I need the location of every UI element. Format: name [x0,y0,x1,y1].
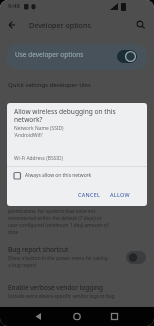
staticText: user-configured (minimum 1 day) amount o… [8,222,109,229]
staticText: 'AndroidWifi' [14,132,43,139]
staticText: reconnected within the default (7 days) … [8,215,102,222]
staticText: Use developer options [15,50,84,59]
staticText: Developer options [29,20,91,30]
staticText: Always allow on this network [25,172,92,179]
staticText: a bug report [8,262,37,269]
staticText: CANCEL [78,191,101,198]
staticText: Enable verbose vendor logging [8,283,103,292]
button[interactable]: ALLOW [103,187,137,201]
button[interactable]: Always allow on this network [7,169,147,183]
staticText: Quick settings developer tiles [8,81,91,89]
button[interactable] [104,308,122,326]
staticText: Show a button in the power menu for taki… [8,255,108,262]
button[interactable]: Enable verbose vendor logging [0,281,154,307]
button[interactable]: Bug report shortcut [0,243,154,277]
button[interactable] [68,308,86,326]
staticText: time [8,229,19,236]
staticText: network? [14,115,43,124]
staticText: Allow wireless debugging on this [14,107,116,116]
button[interactable]: Quick settings developer tiles [0,74,154,94]
staticText: 9:48 [8,2,20,10]
button[interactable]: Use developer options [6,44,148,70]
button[interactable] [28,308,46,326]
staticText: Include extra device-specific vendor log… [8,293,115,300]
staticText: Network Name (SSID) [14,125,64,132]
button[interactable]: CANCEL [71,187,107,201]
staticText: ALLOW [110,191,130,198]
staticText: permissions, for systems that have not [8,208,96,215]
button[interactable]: Developer options [0,14,154,42]
staticText: Wi-Fi Address (BSSID) [14,155,63,162]
staticText: Bug report shortcut [8,245,69,254]
